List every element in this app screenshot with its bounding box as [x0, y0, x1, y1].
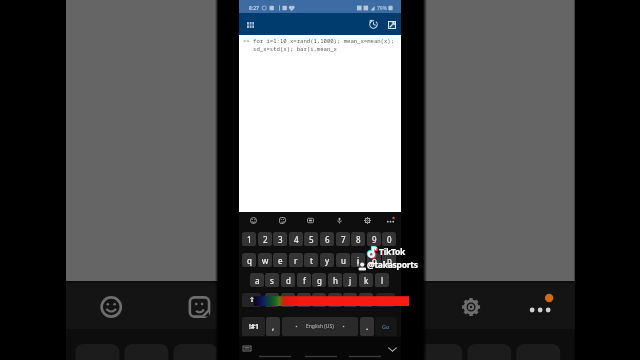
- staticText: sd_x=std(x); bar(i,mean_x: [243, 45, 337, 53]
- button[interactable]: g: [312, 273, 326, 287]
- button[interactable]: k: [359, 273, 373, 287]
- button[interactable]: m: [359, 293, 373, 307]
- staticText: r: [294, 255, 298, 266]
- button[interactable]: 9: [367, 232, 381, 246]
- staticText: 8: [356, 234, 361, 245]
- staticText: English (US): [306, 323, 334, 330]
- button[interactable]: 2: [258, 232, 272, 246]
- staticText: 1: [247, 234, 252, 245]
- staticText: y: [325, 255, 330, 266]
- button[interactable]: v: [312, 293, 326, 307]
- button[interactable]: y: [320, 253, 334, 267]
- button[interactable]: h: [328, 273, 342, 287]
- staticText: 4: [294, 234, 299, 245]
- button[interactable]: x: [281, 293, 295, 307]
- staticText: 6: [325, 234, 330, 245]
- button[interactable]: d: [281, 273, 295, 287]
- staticText: p: [387, 255, 392, 266]
- staticText: Go: [382, 323, 390, 330]
- staticText: >> for i=1:10 x=rand(1,1000); mean_x=mea…: [243, 37, 395, 45]
- staticText: o: [372, 255, 377, 266]
- button[interactable]: Stickers: [273, 211, 291, 229]
- staticText: ⌫: [381, 296, 391, 304]
- button[interactable]: Backspace: [376, 293, 395, 307]
- staticText: ⇧: [249, 296, 255, 304]
- staticText: t: [310, 255, 313, 266]
- staticText: 2: [263, 234, 268, 245]
- button[interactable]: 5: [304, 232, 318, 246]
- button[interactable]: Symbols: [242, 317, 265, 336]
- button[interactable]: f: [297, 273, 311, 287]
- staticText: .: [366, 321, 369, 332]
- staticText: j: [349, 275, 352, 286]
- button[interactable]: i: [351, 253, 365, 267]
- staticText: c: [302, 295, 306, 306]
- staticText: i: [357, 255, 360, 266]
- button[interactable]: GIF: [301, 211, 319, 229]
- button[interactable]: 0: [382, 232, 396, 246]
- staticText: s: [270, 275, 274, 286]
- button[interactable]: c: [297, 293, 311, 307]
- staticText: h: [333, 275, 338, 286]
- staticText: @takasports: [367, 259, 418, 271]
- button[interactable]: j: [343, 273, 357, 287]
- staticText: 8:27: [249, 5, 259, 12]
- button[interactable]: Settings: [358, 211, 376, 229]
- staticText: z: [270, 295, 274, 306]
- button[interactable]: 8: [351, 232, 365, 246]
- staticText: 3: [278, 234, 283, 245]
- staticText: a: [255, 275, 260, 286]
- staticText: k: [364, 275, 369, 286]
- staticText: TikTok: [379, 246, 406, 258]
- staticText: w: [262, 255, 269, 266]
- button[interactable]: 4: [289, 232, 303, 246]
- staticText: ,: [272, 321, 275, 332]
- staticText: e: [278, 255, 283, 266]
- staticText: v: [317, 295, 322, 306]
- button[interactable]: Hide keyboard: [385, 342, 399, 356]
- staticText: f: [303, 275, 306, 286]
- button[interactable]: Emoji: [244, 211, 262, 229]
- button[interactable]: More options: [381, 211, 399, 229]
- button[interactable]: l: [375, 273, 389, 287]
- staticText: x: [286, 295, 291, 306]
- button[interactable]: z: [265, 293, 279, 307]
- button[interactable]: 3: [273, 232, 287, 246]
- staticText: b: [333, 295, 338, 306]
- staticText: l: [381, 275, 384, 286]
- staticText: !#1: [249, 322, 259, 331]
- button[interactable]: 7: [336, 232, 350, 246]
- button[interactable]: r: [289, 253, 303, 267]
- staticText: 0: [387, 234, 392, 245]
- staticText: g: [317, 275, 322, 286]
- button[interactable]: 1: [242, 232, 256, 246]
- button[interactable]: o: [367, 253, 381, 267]
- button[interactable]: b: [328, 293, 342, 307]
- button[interactable]: .: [360, 317, 374, 336]
- button[interactable]: n: [343, 293, 357, 307]
- button[interactable]: Space: [282, 317, 358, 336]
- button[interactable]: p: [382, 253, 396, 267]
- button[interactable]: w: [258, 253, 272, 267]
- button[interactable]: 6: [320, 232, 334, 246]
- button[interactable]: Menu: [244, 18, 257, 31]
- button[interactable]: Change keyboard: [241, 342, 253, 354]
- button[interactable]: s: [265, 273, 279, 287]
- button[interactable]: e: [273, 253, 287, 267]
- staticText: n: [348, 295, 353, 306]
- staticText: d: [286, 275, 291, 286]
- staticText: 7: [341, 234, 346, 245]
- button[interactable]: q: [242, 253, 256, 267]
- button[interactable]: ,: [266, 317, 280, 336]
- button[interactable]: History: [367, 18, 380, 31]
- button[interactable]: Expand: [385, 18, 398, 31]
- button[interactable]: Shift: [242, 293, 261, 307]
- staticText: 5: [309, 234, 314, 245]
- staticText: u: [341, 255, 346, 266]
- button[interactable]: Voice input: [330, 211, 348, 229]
- staticText: 9: [372, 234, 377, 245]
- button[interactable]: u: [336, 253, 350, 267]
- button[interactable]: a: [250, 273, 264, 287]
- button[interactable]: Go: [375, 317, 397, 336]
- button[interactable]: t: [304, 253, 318, 267]
